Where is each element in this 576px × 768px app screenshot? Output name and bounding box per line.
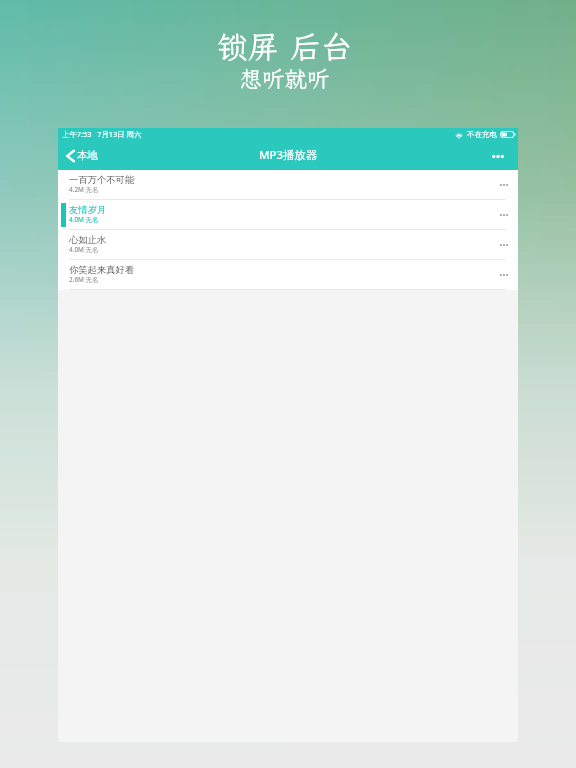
button[interactable]: 一百万个不可能 (58, 170, 518, 200)
staticText: 锁屏 后台 (217, 26, 352, 67)
button[interactable]: 心如止水 (58, 230, 518, 260)
staticText: 上午7:53 7月13日 周六 (62, 129, 142, 139)
staticText: 4.0M 无名 (69, 245, 99, 254)
button[interactable]: 你笑起来真好看 (58, 260, 518, 290)
staticText: 你笑起来真好看 (69, 264, 135, 276)
button[interactable]: Song options (490, 236, 518, 254)
button[interactable]: 友情岁月 (58, 200, 518, 230)
staticText: 本地 (77, 149, 99, 162)
staticText: 不在充电 (467, 130, 497, 139)
staticText: 一百万个不可能 (69, 174, 135, 186)
button[interactable]: Song options (490, 206, 518, 224)
staticText: 友情岁月 (69, 204, 107, 216)
button[interactable]: More options (480, 147, 518, 166)
staticText: 心如止水 (69, 234, 107, 246)
button[interactable]: 本地 (58, 145, 109, 166)
button[interactable]: Song options (490, 266, 518, 284)
staticText: 2.6M 无名 (69, 275, 99, 284)
staticText: 4.0M 无名 (69, 215, 99, 224)
staticText: MP3播放器 (259, 147, 318, 163)
staticText: 想听就听 (239, 64, 330, 94)
staticText: 4.2M 无名 (69, 185, 99, 194)
button[interactable]: Song options (490, 176, 518, 194)
